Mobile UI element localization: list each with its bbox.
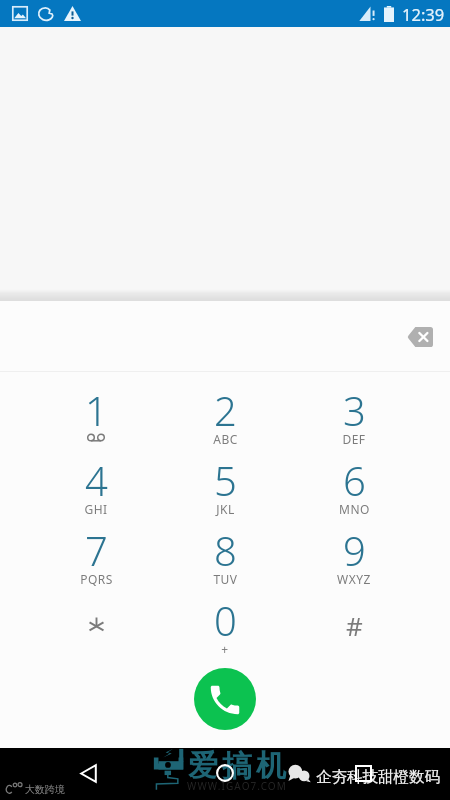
- button[interactable]: 5: [161, 450, 289, 520]
- button[interactable]: Back: [58, 747, 118, 799]
- button[interactable]: 8: [161, 520, 289, 590]
- staticText: ABC: [213, 431, 238, 447]
- button[interactable]: Backspace: [397, 314, 442, 359]
- button[interactable]: #: [290, 590, 418, 660]
- button[interactable]: 4: [32, 450, 160, 520]
- button[interactable]: 7: [32, 520, 160, 590]
- staticText: 8: [214, 523, 237, 577]
- button[interactable]: Recents: [333, 747, 393, 799]
- button[interactable]: 6: [290, 450, 418, 520]
- button[interactable]: 1: [32, 380, 160, 450]
- staticText: 1: [85, 383, 108, 437]
- staticText: 4: [85, 453, 108, 507]
- staticText: WXYZ: [337, 571, 371, 587]
- button[interactable]: 9: [290, 520, 418, 590]
- staticText: GHI: [84, 501, 108, 517]
- button[interactable]: 0: [161, 590, 289, 660]
- staticText: 7: [85, 523, 108, 577]
- staticText: JKL: [216, 501, 235, 517]
- staticText: 大数跨境: [25, 783, 65, 796]
- button[interactable]: 2: [161, 380, 289, 450]
- staticText: 9: [343, 523, 366, 577]
- staticText: 企夯科技甜橙数码: [316, 767, 440, 787]
- button[interactable]: [32, 590, 160, 660]
- staticText: #: [346, 608, 363, 643]
- button[interactable]: Call: [194, 668, 256, 730]
- button[interactable]: Home: [195, 747, 255, 799]
- staticText: +: [221, 641, 229, 657]
- staticText: 5: [214, 453, 237, 507]
- staticText: MNO: [339, 501, 370, 517]
- staticText: DEF: [342, 431, 366, 447]
- staticText: 3: [343, 383, 366, 437]
- staticText: PQRS: [80, 571, 113, 587]
- button[interactable]: 3: [290, 380, 418, 450]
- staticText: 0: [214, 593, 237, 647]
- staticText: WWW.IGAO7.COM: [187, 779, 287, 793]
- staticText: 6: [343, 453, 366, 507]
- staticText: 爱搞机: [186, 747, 288, 785]
- staticText: TUV: [213, 571, 238, 587]
- staticText: 2: [214, 383, 237, 437]
- staticText: 12:39: [402, 3, 445, 25]
